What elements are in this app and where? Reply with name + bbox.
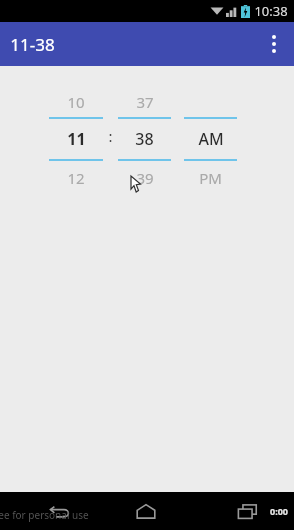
staticText: AM (198, 128, 224, 150)
staticText: 11 (67, 128, 86, 150)
staticText: 12 (67, 168, 85, 188)
button[interactable]: More options (254, 24, 294, 64)
staticText: 10 (67, 92, 85, 112)
staticText: PM (199, 168, 222, 188)
staticText: 38 (135, 128, 154, 150)
button[interactable]: Recent apps (227, 492, 267, 530)
staticText: 10:38 (254, 2, 288, 20)
staticText: ree for personal use (0, 508, 89, 522)
staticText: 0:00 (270, 505, 288, 517)
staticText: 39 (136, 168, 154, 188)
button[interactable]: Home (126, 492, 166, 530)
staticText: 11-38 (10, 33, 55, 56)
button[interactable]: Back (40, 492, 80, 530)
staticText: 37 (136, 92, 154, 112)
button[interactable]: AM PM (184, 86, 237, 195)
staticText: : (108, 126, 113, 146)
button[interactable]: Hour (49, 86, 103, 195)
button[interactable]: Minute (118, 86, 171, 195)
